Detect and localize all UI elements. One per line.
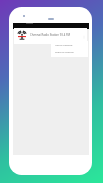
button[interactable]: Share to Friends bbox=[51, 48, 88, 55]
staticText: Share to Friends bbox=[55, 50, 74, 53]
staticText: Add to Favorite bbox=[55, 43, 73, 46]
staticText: Chennai Radio Station 93.4 FM bbox=[30, 33, 70, 37]
button[interactable]: Add to Favorite bbox=[51, 41, 88, 48]
